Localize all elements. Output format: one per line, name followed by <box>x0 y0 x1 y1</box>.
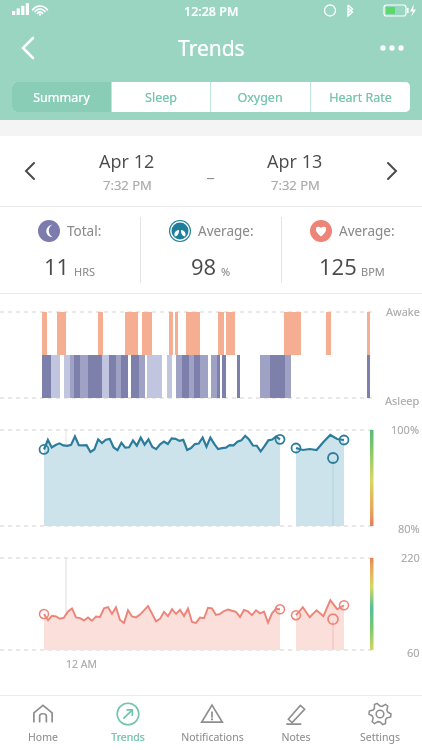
button[interactable]: Average: <box>141 207 281 293</box>
button[interactable]: Trends <box>85 696 170 750</box>
staticText: Apr 13 <box>267 149 323 174</box>
staticText: Sleep <box>145 89 177 106</box>
staticText: 12 AM <box>66 657 97 671</box>
staticText: BPM <box>361 264 385 279</box>
staticText: HRS <box>74 264 96 279</box>
button[interactable]: Average: <box>282 207 422 293</box>
staticText: 7:32 PM <box>103 176 152 194</box>
staticText: Notes <box>281 730 311 744</box>
staticText: Total: <box>67 222 102 240</box>
button[interactable]: Awake <box>0 294 422 416</box>
button[interactable]: More options <box>370 26 414 70</box>
staticText: Apr 12 <box>99 149 155 174</box>
staticText: Asleep <box>385 393 420 408</box>
staticText: % <box>221 264 231 279</box>
staticText: 220 <box>401 550 420 565</box>
button[interactable]: Settings <box>338 696 422 750</box>
staticText: Trends <box>178 34 245 63</box>
staticText: Summary <box>33 89 90 106</box>
button[interactable]: Notes <box>254 696 338 750</box>
staticText: Trends <box>111 730 145 744</box>
staticText: 7:32 PM <box>271 176 320 194</box>
staticText: 11 <box>44 251 70 281</box>
button[interactable]: Total: <box>0 207 140 293</box>
button[interactable]: Next <box>362 136 422 206</box>
button[interactable]: Previous <box>0 136 60 206</box>
staticText: 125 <box>319 251 357 281</box>
button[interactable]: Oxygen <box>210 82 310 112</box>
staticText: Home <box>28 730 58 744</box>
staticText: 100% <box>391 422 420 437</box>
staticText: Oxygen <box>237 89 283 106</box>
button[interactable]: Sleep <box>111 82 210 112</box>
staticText: 12:28 PM <box>184 3 239 20</box>
button[interactable]: Summary <box>12 82 111 112</box>
staticText: 80% <box>398 521 420 536</box>
staticText: Settings <box>360 730 400 744</box>
staticText: Heart Rate <box>329 89 392 106</box>
button[interactable]: 220 <box>0 544 422 672</box>
staticText: 60 <box>407 645 420 660</box>
staticText: 98 <box>191 251 217 281</box>
button[interactable]: Heart Rate <box>310 82 410 112</box>
staticText: Average: <box>198 222 254 240</box>
staticText: Notifications <box>181 730 244 744</box>
button[interactable]: Back <box>6 26 50 70</box>
staticText: Average: <box>339 222 395 240</box>
staticText: Awake <box>386 304 420 319</box>
staticText: _ <box>207 160 215 182</box>
button[interactable]: Home <box>0 696 85 750</box>
button[interactable]: Notifications <box>170 696 254 750</box>
button[interactable]: 100% <box>0 416 422 544</box>
